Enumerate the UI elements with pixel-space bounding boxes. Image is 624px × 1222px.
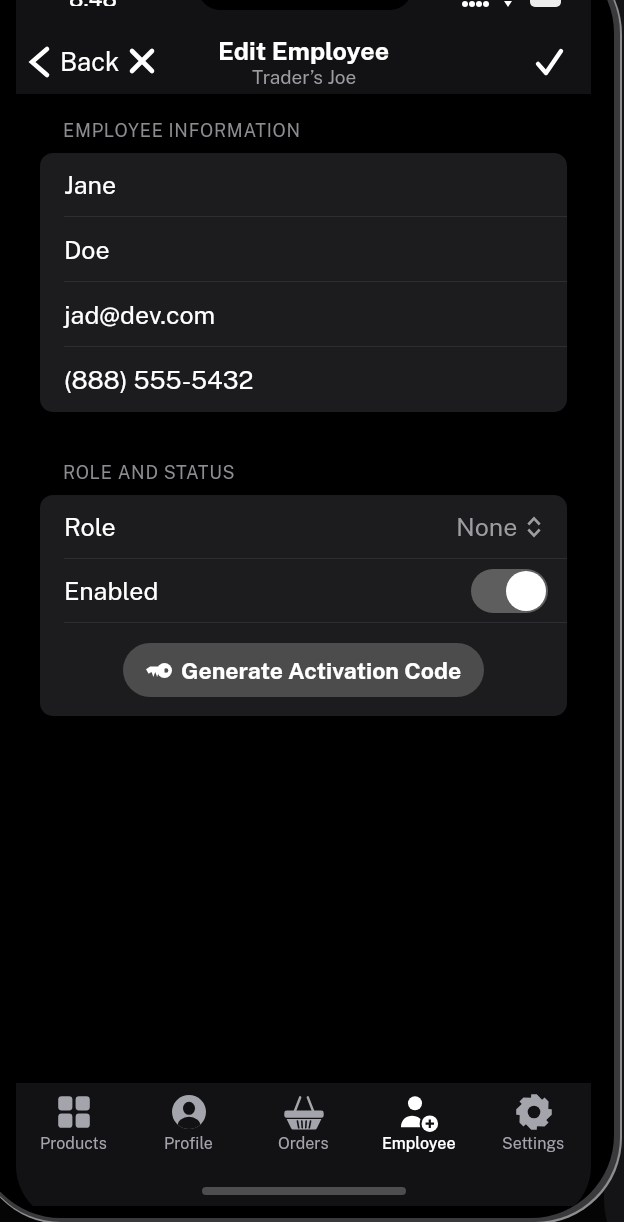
staticText: Trader’s Joe [252,66,357,88]
button[interactable]: Save [525,38,573,86]
button[interactable]: Settings [476,1092,591,1155]
button[interactable]: Generate Activation Code [123,643,484,697]
staticText: (888) 555-5432 [64,365,254,394]
staticText: Back [60,47,120,77]
button[interactable]: Orders [246,1092,361,1155]
staticText: Doe [64,235,110,264]
staticText: Enabled [64,576,159,605]
staticText: EMPLOYEE INFORMATION [63,120,301,141]
button[interactable]: Doe [40,217,567,282]
button[interactable]: Back [25,41,124,83]
button[interactable]: (888) 555-5432 [40,347,567,412]
staticText: Profile [164,1134,213,1153]
button[interactable]: Role [40,495,567,559]
staticText: Role [64,512,116,541]
button[interactable]: Enabled [40,559,567,623]
staticText: Employee [382,1134,456,1153]
staticText: Settings [502,1134,565,1153]
button[interactable]: Products [16,1092,131,1155]
button[interactable]: Close [121,40,163,82]
staticText: 8:48 [69,0,117,6]
staticText: None [456,512,518,541]
staticText: Edit Employee [218,36,390,65]
staticText: Jane [64,170,117,199]
staticText: ROLE AND STATUS [63,462,236,483]
button[interactable]: jad@dev.com [40,282,567,347]
button[interactable]: Employee [361,1092,476,1155]
staticText: jad@dev.com [64,300,216,329]
button[interactable]: Profile [131,1092,246,1155]
staticText: Generate Activation Code [181,657,462,684]
staticText: Orders [278,1134,329,1153]
button[interactable]: Jane [40,153,567,217]
staticText: Products [40,1134,107,1153]
